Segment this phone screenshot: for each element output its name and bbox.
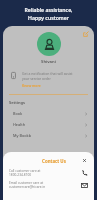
button[interactable]: Health	[9, 119, 88, 130]
staticText: Call customer care at	[9, 169, 41, 173]
staticText: customercare@hicare.in	[9, 185, 46, 189]
staticText: Settings	[9, 100, 88, 105]
staticText: Reliable assistance,	[24, 6, 73, 13]
staticText: Shivani	[41, 59, 56, 65]
staticText: Know more	[22, 83, 41, 88]
button[interactable]: My Bookb	[9, 130, 88, 141]
staticText: 1800-234-8100	[9, 173, 32, 177]
staticText: Health	[13, 122, 83, 127]
staticText: Email customer care at	[9, 181, 44, 185]
button[interactable]: Book	[9, 108, 88, 119]
button[interactable]: Close	[81, 157, 88, 164]
button[interactable]: Call customer care at	[9, 169, 88, 177]
button[interactable]: Email customer care at	[9, 181, 88, 189]
staticText: Book	[13, 111, 83, 116]
other: Call	[80, 169, 88, 177]
button[interactable]: Know more	[22, 83, 41, 88]
staticText: Contact Us	[27, 158, 81, 164]
button[interactable]: Edit profile	[82, 30, 89, 37]
staticText: My Bookb	[13, 133, 83, 138]
staticText: Get a notification that will assist	[22, 71, 73, 76]
other: Email	[80, 181, 88, 189]
button[interactable]	[37, 32, 61, 56]
staticText: Happy customer	[28, 14, 69, 21]
staticText: your service order	[22, 76, 51, 81]
